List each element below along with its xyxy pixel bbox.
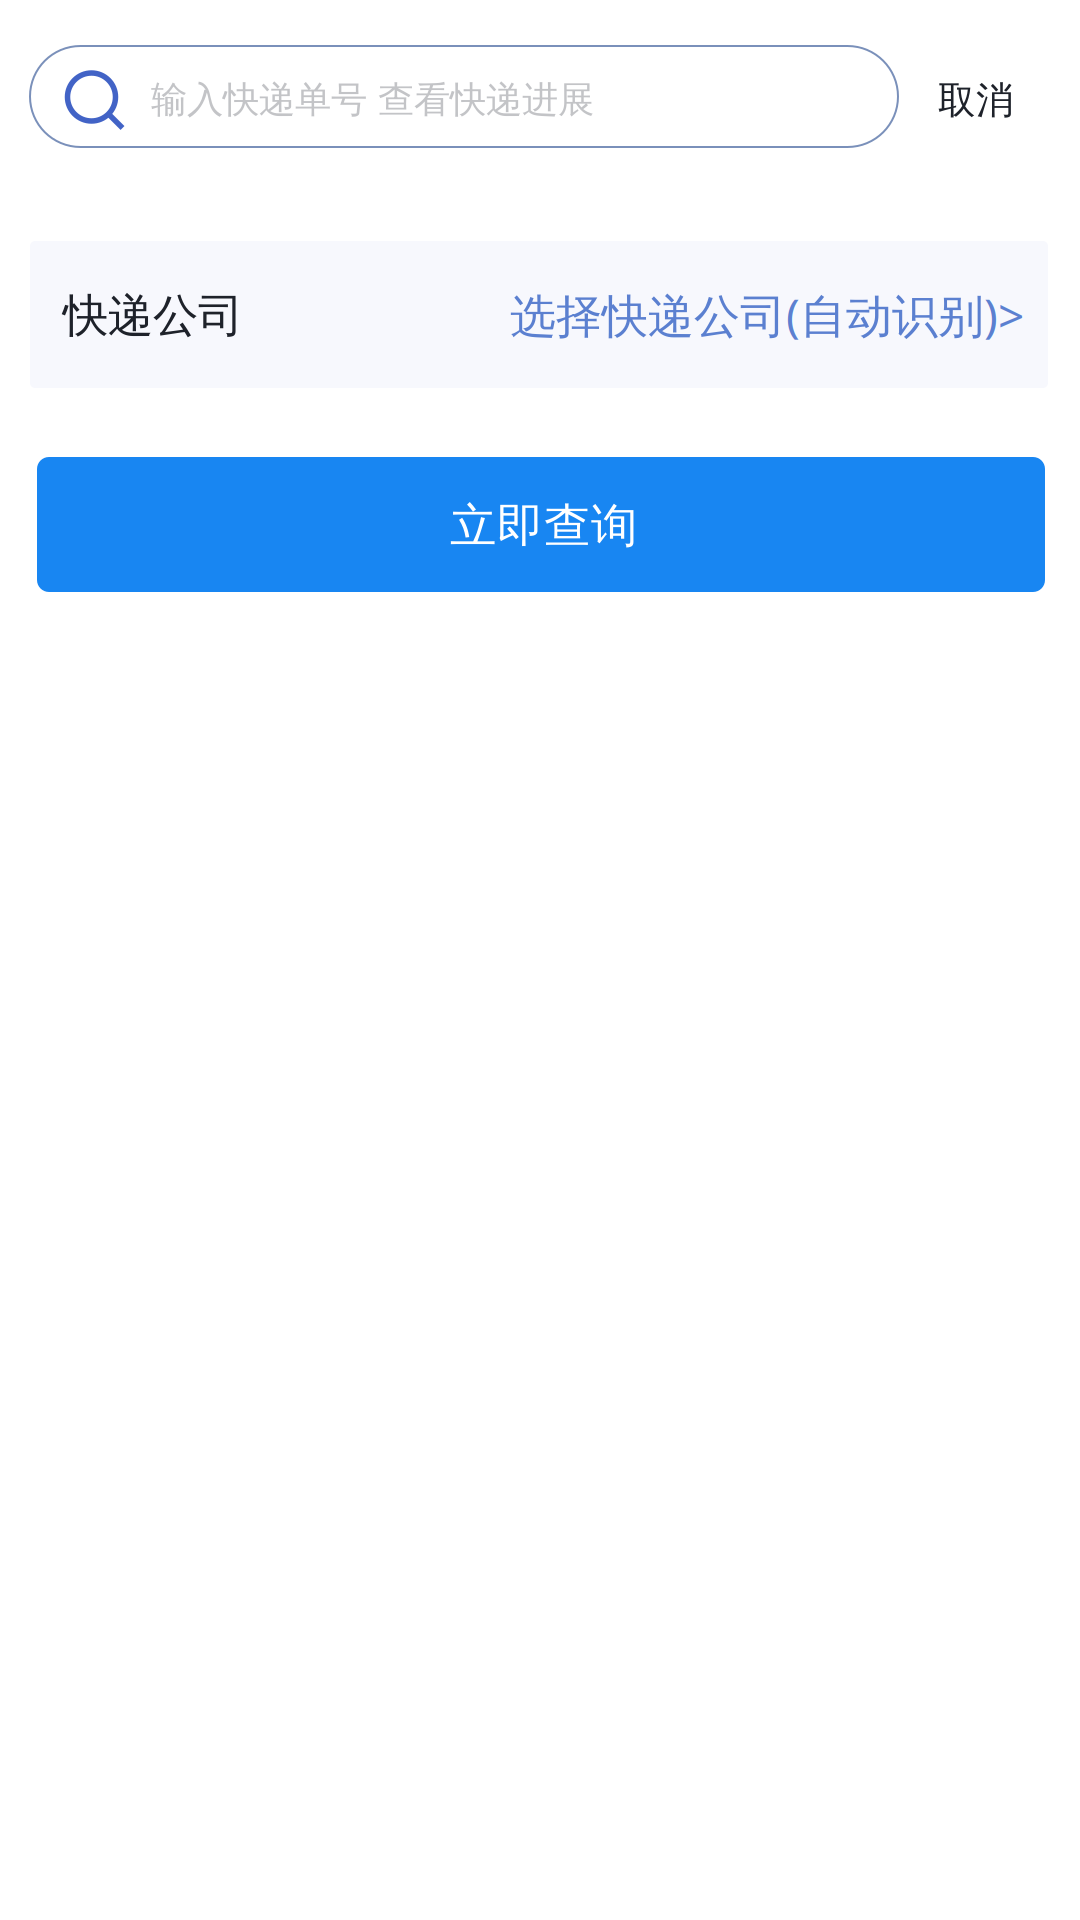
button[interactable]: 输入快递单号 查看快递进展 (30, 46, 898, 147)
staticText: 输入快递单号 查看快递进展 (151, 77, 594, 123)
staticText: 快递公司 (63, 287, 243, 344)
button[interactable]: 快递公司 (30, 241, 1048, 388)
staticText: 选择快递公司(自动识别)> (510, 284, 1024, 346)
button[interactable]: 取消 (898, 46, 1050, 147)
button[interactable]: 立即查询 (37, 457, 1045, 592)
staticText: 取消 (938, 77, 1014, 124)
staticText: 立即查询 (450, 497, 638, 555)
